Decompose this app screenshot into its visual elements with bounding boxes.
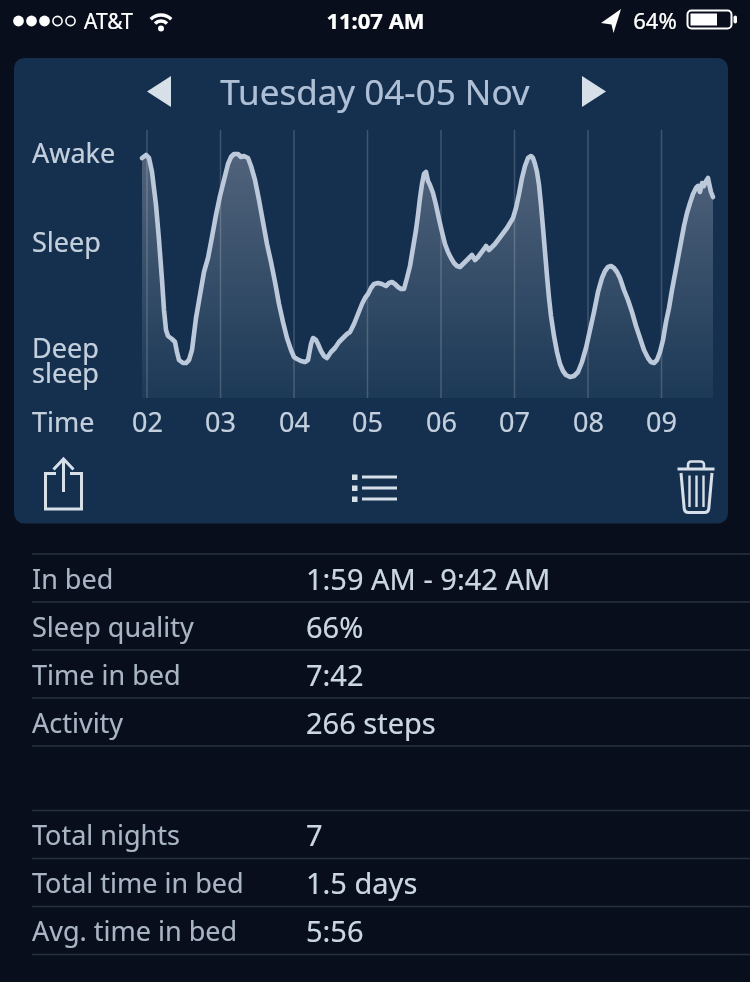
staticText: 05: [352, 403, 383, 439]
staticText: 7: [306, 815, 323, 854]
staticText: Deep sleep: [32, 329, 99, 391]
staticText: 266 steps: [306, 703, 436, 742]
staticText: 11:07 AM: [326, 5, 425, 35]
button[interactable]: [668, 452, 724, 516]
staticText: AT&T: [84, 7, 133, 36]
button[interactable]: [138, 66, 182, 110]
staticText: Avg. time in bed: [32, 912, 238, 949]
staticText: Activity: [32, 704, 124, 741]
staticText: Sleep quality: [32, 608, 194, 645]
staticText: Sleep: [32, 223, 101, 259]
staticText: 64%: [633, 5, 677, 35]
button[interactable]: [570, 66, 614, 110]
staticText: 1:59 AM - 9:42 AM: [306, 559, 551, 598]
staticText: Total time in bed: [32, 864, 244, 901]
staticText: 09: [646, 403, 677, 439]
staticText: In bed: [32, 560, 114, 597]
staticText: Total nights: [32, 816, 180, 853]
button[interactable]: [340, 462, 410, 508]
staticText: 1.5 days: [306, 863, 418, 902]
staticText: 5:56: [306, 911, 364, 950]
staticText: 04: [279, 403, 310, 439]
staticText: 06: [426, 403, 457, 439]
staticText: 66%: [306, 607, 364, 646]
staticText: 03: [205, 403, 236, 439]
staticText: 08: [573, 403, 604, 439]
button[interactable]: [36, 450, 92, 514]
staticText: Time: [32, 403, 95, 439]
staticText: 07: [499, 403, 530, 439]
staticText: 02: [132, 403, 163, 439]
staticText: 7:42: [306, 655, 364, 694]
staticText: Awake: [32, 134, 116, 170]
staticText: Tuesday 04-05 Nov: [220, 68, 530, 116]
staticText: Time in bed: [32, 656, 181, 693]
